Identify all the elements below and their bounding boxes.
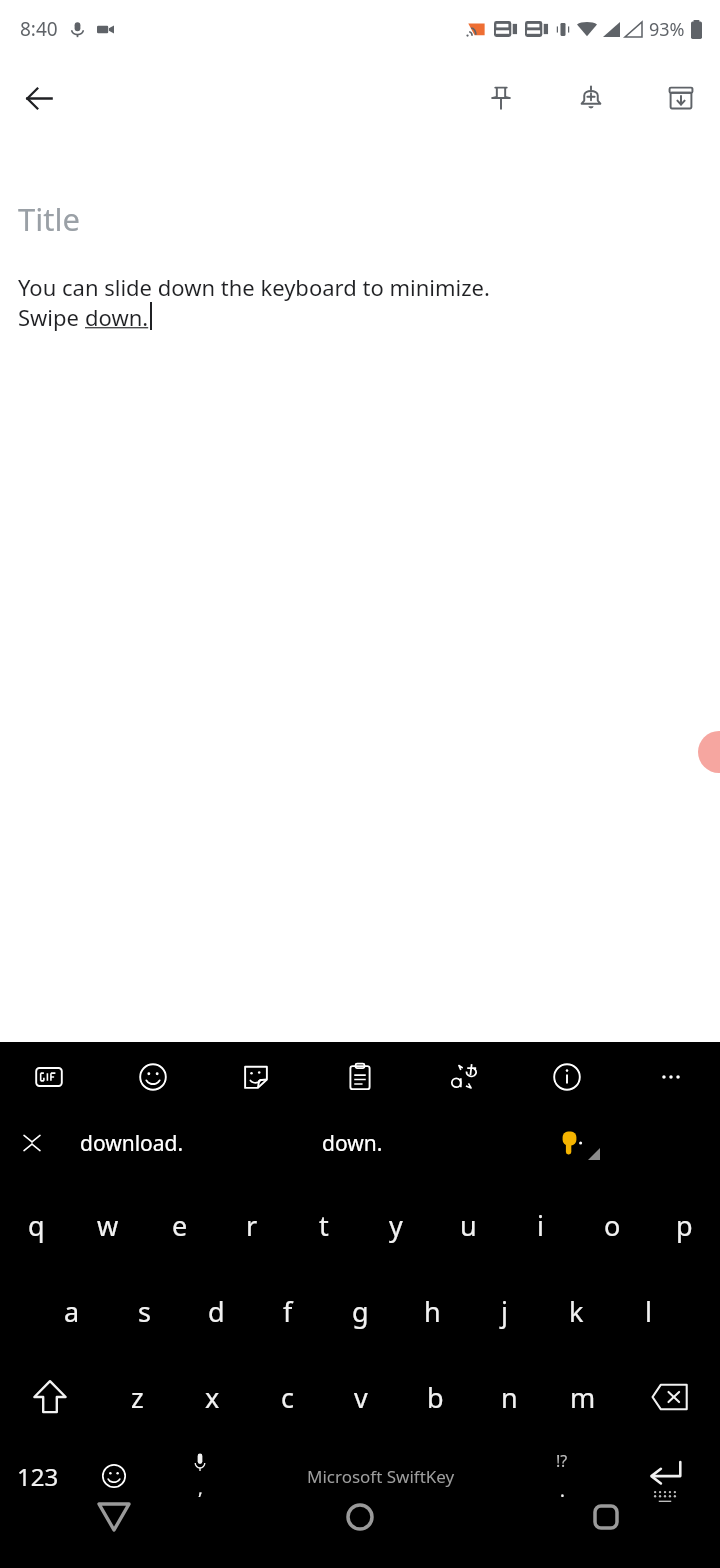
button[interactable]: y: [360, 1182, 432, 1268]
button[interactable]: Voice input: [152, 1440, 248, 1512]
button[interactable]: Pin: [472, 69, 530, 127]
button[interactable]: Recent apps: [575, 1486, 637, 1548]
button[interactable]: p: [648, 1182, 720, 1268]
staticText: c: [281, 1379, 294, 1416]
button[interactable]: download.: [80, 1112, 220, 1174]
staticText: g: [352, 1293, 369, 1330]
button[interactable]: Back: [10, 69, 68, 127]
button[interactable]: t: [288, 1182, 360, 1268]
button[interactable]: d: [180, 1268, 252, 1354]
staticText: m: [570, 1379, 596, 1416]
button[interactable]: Emoji suggestion: [540, 1112, 602, 1174]
button[interactable]: Shift: [0, 1354, 100, 1440]
button[interactable]: c: [250, 1354, 324, 1440]
staticText: Swipe: [18, 302, 85, 332]
button[interactable]: g: [324, 1268, 396, 1354]
staticText: j: [501, 1293, 508, 1330]
staticText: z: [131, 1379, 144, 1416]
button[interactable]: Back: [83, 1486, 145, 1548]
staticText: download.: [80, 1129, 184, 1158]
button[interactable]: u: [432, 1182, 504, 1268]
staticText: f: [283, 1293, 293, 1330]
staticText: Title: [18, 198, 80, 240]
staticText: ,: [198, 1476, 203, 1501]
staticText: l: [645, 1293, 652, 1330]
button[interactable]: v: [324, 1354, 398, 1440]
button[interactable]: x: [175, 1354, 250, 1440]
staticText: e: [172, 1207, 188, 1244]
button[interactable]: Redo: [422, 1463, 478, 1519]
button[interactable]: Add: [14, 1463, 70, 1519]
staticText: d: [208, 1293, 225, 1330]
staticText: i: [537, 1207, 544, 1244]
staticText: u: [460, 1207, 477, 1244]
button[interactable]: 123: [0, 1440, 76, 1512]
button[interactable]: k: [540, 1268, 612, 1354]
staticText: w: [97, 1207, 119, 1244]
staticText: v: [354, 1379, 368, 1416]
button[interactable]: r: [216, 1182, 288, 1268]
staticText: a: [64, 1293, 80, 1330]
button[interactable]: e: [144, 1182, 216, 1268]
staticText: p: [676, 1207, 693, 1244]
button[interactable]: f: [252, 1268, 324, 1354]
button[interactable]: !?: [514, 1440, 610, 1512]
button[interactable]: Reminder: [562, 69, 620, 127]
button[interactable]: Close predictions: [8, 1119, 56, 1167]
staticText: 93%: [649, 17, 685, 42]
button[interactable]: m: [546, 1354, 620, 1440]
staticText: q: [28, 1207, 45, 1244]
button[interactable]: s: [108, 1268, 180, 1354]
button[interactable]: z: [100, 1354, 175, 1440]
button[interactable]: Microsoft SwiftKey: [248, 1440, 514, 1512]
button[interactable]: Backspace: [620, 1354, 720, 1440]
button[interactable]: Archive: [652, 69, 710, 127]
button[interactable]: h: [396, 1268, 468, 1354]
button[interactable]: Home: [329, 1486, 391, 1548]
button[interactable]: You can slide down the keyboard to minim…: [18, 272, 702, 332]
button[interactable]: GIF: [22, 1050, 76, 1104]
button[interactable]: q: [0, 1182, 72, 1268]
staticText: t: [319, 1207, 329, 1244]
staticText: !?: [556, 1450, 568, 1472]
staticText: b: [427, 1379, 444, 1416]
button[interactable]: More options: [650, 1463, 706, 1519]
button[interactable]: w: [72, 1182, 144, 1268]
staticText: k: [569, 1293, 584, 1330]
staticText: 8:40: [20, 16, 58, 42]
button[interactable]: l: [612, 1268, 684, 1354]
button[interactable]: Title: [18, 198, 702, 240]
staticText: o: [604, 1207, 621, 1244]
button[interactable]: o: [576, 1182, 648, 1268]
button[interactable]: Emoji keyboard: [76, 1440, 152, 1512]
button[interactable]: Clipboard: [333, 1050, 387, 1104]
button[interactable]: Stickers: [229, 1050, 283, 1104]
button[interactable]: j: [468, 1268, 540, 1354]
button[interactable]: i: [504, 1182, 576, 1268]
staticText: down.: [85, 302, 149, 332]
staticText: r: [246, 1207, 258, 1244]
staticText: .: [560, 1478, 565, 1503]
staticText: h: [424, 1293, 441, 1330]
button[interactable]: a: [36, 1268, 108, 1354]
staticText: You can slide down the keyboard to minim…: [18, 272, 490, 302]
button[interactable]: n: [472, 1354, 546, 1440]
staticText: n: [501, 1379, 518, 1416]
button[interactable]: Undo: [332, 1463, 388, 1519]
staticText: s: [138, 1293, 151, 1330]
button[interactable]: b: [398, 1354, 472, 1440]
button[interactable]: Color palette: [104, 1463, 160, 1519]
staticText: y: [389, 1207, 403, 1244]
button[interactable]: Emoji: [126, 1050, 180, 1104]
button[interactable]: down.: [322, 1112, 432, 1174]
staticText: 123: [17, 1460, 59, 1493]
button[interactable]: Enter: [610, 1440, 720, 1522]
staticText: Microsoft SwiftKey: [307, 1465, 455, 1488]
staticText: down.: [322, 1129, 383, 1158]
button[interactable]: More: [644, 1050, 698, 1104]
staticText: x: [205, 1379, 220, 1416]
button[interactable]: Translate: [437, 1050, 491, 1104]
button[interactable]: Info: [540, 1050, 594, 1104]
